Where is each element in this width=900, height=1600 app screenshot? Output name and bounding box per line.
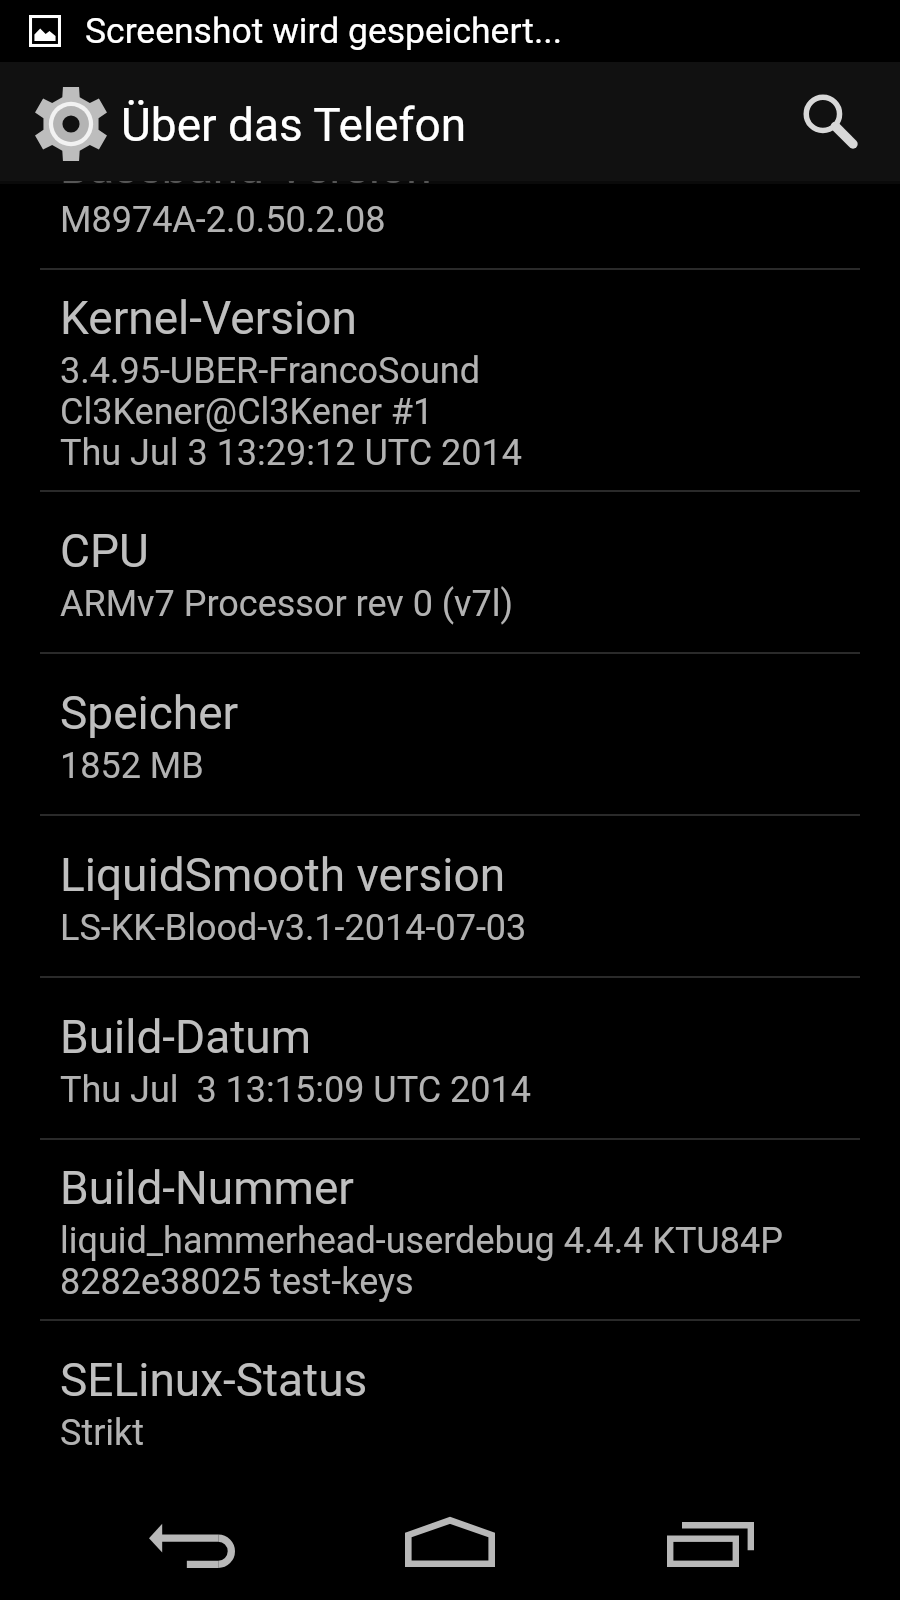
- staticText: 8282e38025 test-keys: [60, 1262, 414, 1303]
- staticText: liquid_hammerhead-userdebug 4.4.4 KTU84P: [60, 1221, 783, 1262]
- staticText: LS-KK-Blood-v3.1-2014-07-03: [60, 908, 527, 949]
- button[interactable]: LiquidSmooth version: [0, 816, 900, 976]
- staticText: Build-Nummer: [60, 1161, 354, 1215]
- staticText: M8974A-2.0.50.2.08: [60, 200, 386, 241]
- staticText: Thu Jul 3 13:15:09 UTC 2014: [60, 1070, 531, 1111]
- button[interactable]: Baseband-Version: [0, 108, 900, 268]
- button[interactable]: Recents: [630, 1478, 790, 1600]
- button[interactable]: CPU: [0, 492, 900, 652]
- staticText: Speicher: [60, 686, 239, 740]
- button[interactable]: Kernel-Version: [0, 270, 900, 490]
- staticText: Baseband-Version: [60, 140, 432, 194]
- button[interactable]: Speicher: [0, 654, 900, 814]
- staticText: ARMv7 Processor rev 0 (v7l): [60, 584, 514, 625]
- staticText: Build-Datum: [60, 1010, 312, 1064]
- staticText: 3.4.95-UBER-FrancoSound: [60, 351, 480, 392]
- button[interactable]: Search: [782, 62, 900, 184]
- button[interactable]: SELinux-Status: [0, 1321, 900, 1481]
- button[interactable]: Back: [112, 1478, 272, 1600]
- staticText: Screenshot wird gespeichert...: [85, 10, 563, 52]
- staticText: LiquidSmooth version: [60, 848, 506, 902]
- staticText: 1852 MB: [60, 746, 204, 787]
- staticText: CPU: [60, 524, 149, 578]
- button[interactable]: Build-Datum: [0, 978, 900, 1138]
- staticText: Cl3Kener@Cl3Kener #1: [60, 392, 434, 433]
- staticText: Über das Telefon: [121, 98, 467, 152]
- staticText: Kernel-Version: [60, 291, 357, 345]
- button[interactable]: Home: [370, 1478, 530, 1600]
- button[interactable]: Build-Nummer: [0, 1140, 900, 1319]
- staticText: Strikt: [60, 1413, 145, 1454]
- staticText: Thu Jul 3 13:29:12 UTC 2014: [60, 433, 523, 474]
- staticText: SELinux-Status: [60, 1353, 368, 1407]
